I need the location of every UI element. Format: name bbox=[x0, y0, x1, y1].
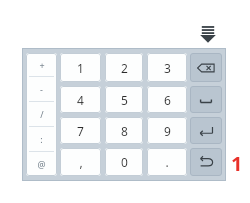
button[interactable]: - bbox=[26, 77, 57, 101]
staticText: 3 bbox=[164, 60, 171, 76]
button[interactable]: 9 bbox=[147, 117, 187, 144]
staticText: 9 bbox=[164, 123, 171, 139]
button[interactable]: + bbox=[26, 53, 57, 76]
staticText: 1 bbox=[77, 60, 84, 76]
button[interactable]: Enter bbox=[190, 117, 222, 144]
staticText: : bbox=[40, 133, 43, 145]
staticText: + bbox=[39, 59, 45, 71]
staticText: @ bbox=[37, 158, 46, 170]
button[interactable]: 6 bbox=[147, 86, 187, 113]
staticText: 4 bbox=[77, 92, 84, 108]
button[interactable]: 5 bbox=[105, 86, 143, 113]
button[interactable]: Hide keyboard bbox=[198, 25, 218, 43]
staticText: 8 bbox=[121, 123, 128, 139]
staticText: - bbox=[40, 83, 43, 95]
button[interactable]: Undo bbox=[190, 148, 222, 176]
staticText: . bbox=[165, 154, 169, 170]
button[interactable]: 4 bbox=[60, 86, 101, 113]
button[interactable]: 0 bbox=[105, 148, 143, 176]
staticText: 7 bbox=[77, 123, 84, 139]
staticText: 6 bbox=[164, 92, 171, 108]
button[interactable]: @ bbox=[26, 152, 57, 176]
staticText: 1 bbox=[231, 150, 243, 174]
staticText: 0 bbox=[121, 154, 128, 170]
button[interactable]: 7 bbox=[60, 117, 101, 144]
button[interactable]: 1 bbox=[60, 53, 101, 82]
button[interactable]: 2 bbox=[105, 53, 143, 82]
staticText: , bbox=[79, 154, 83, 170]
button[interactable]: . bbox=[147, 148, 187, 176]
staticText: 2 bbox=[121, 60, 128, 76]
button[interactable]: / bbox=[26, 102, 57, 126]
button[interactable]: 8 bbox=[105, 117, 143, 144]
button[interactable]: Backspace bbox=[190, 53, 222, 82]
button[interactable]: : bbox=[26, 127, 57, 151]
staticText: 5 bbox=[121, 92, 128, 108]
button[interactable]: Space bbox=[190, 86, 222, 113]
button[interactable]: 3 bbox=[147, 53, 187, 82]
button[interactable]: , bbox=[60, 148, 101, 176]
staticText: / bbox=[40, 108, 44, 120]
